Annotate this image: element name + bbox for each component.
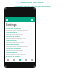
- button[interactable]: Privacy & safety: [5, 55, 35, 59]
- staticText: Privacy & safety: [6, 55, 21, 58]
- staticText: Notifications: [6, 51, 18, 54]
- button[interactable]: [17, 59, 23, 61]
- staticText: Responsive app layout: [20, 1, 44, 4]
- staticText: Manage your profile details: [6, 61, 28, 63]
- staticText: Manage your profile details: [6, 45, 28, 47]
- staticText: Manage your profile details: [6, 29, 28, 31]
- button[interactable]: [23, 59, 29, 61]
- staticText: Theme, font and colors: [6, 41, 25, 43]
- button[interactable]: Notifications: [5, 31, 35, 35]
- button[interactable]: Privacy & safety: [5, 35, 35, 39]
- staticText: Control who can see you: [6, 53, 26, 55]
- staticText: Sounds and vibration: [6, 49, 23, 51]
- button[interactable]: Account settings: [5, 47, 35, 51]
- button[interactable]: Notifications: [5, 51, 35, 55]
- staticText: Account settings: [6, 47, 21, 50]
- button[interactable]: [29, 59, 35, 61]
- staticText: Notifications: [6, 31, 18, 34]
- button[interactable]: Account settings: [5, 27, 35, 31]
- button[interactable]: [5, 59, 11, 61]
- staticText: Material design list screen example: [14, 5, 51, 8]
- staticText: Control who can see you: [6, 37, 26, 39]
- button[interactable]: Appearance: [5, 59, 35, 62]
- staticText: Appearance: [6, 59, 17, 62]
- button[interactable]: Appearance: [5, 39, 35, 43]
- button[interactable]: Storage usage: [5, 43, 35, 47]
- staticText: Appearance: [6, 39, 17, 42]
- staticText: Settings: [6, 23, 17, 27]
- button[interactable]: [11, 59, 17, 61]
- staticText: Storage usage: [6, 43, 19, 46]
- staticText: Privacy & safety: [6, 35, 21, 38]
- staticText: Sounds and vibration: [6, 33, 23, 35]
- staticText: Account settings: [6, 27, 21, 30]
